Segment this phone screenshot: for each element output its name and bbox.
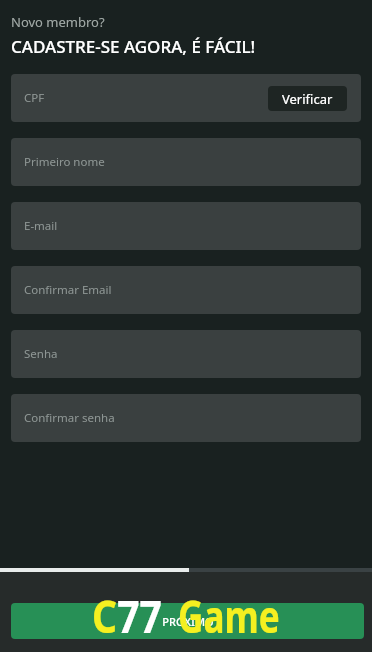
staticText: C xyxy=(92,585,117,646)
staticText: Senha xyxy=(24,346,58,362)
staticText: Game xyxy=(178,585,280,646)
button[interactable]: Confirmar senha xyxy=(11,394,361,442)
button[interactable]: PRÓXIMO xyxy=(11,603,364,639)
staticText: CADASTRE-SE AGORA, É FÁCIL! xyxy=(11,35,256,58)
button[interactable]: Verificar xyxy=(268,86,347,111)
staticText: E-mail xyxy=(24,218,58,234)
button[interactable]: E-mail xyxy=(11,202,361,250)
staticText: Verificar xyxy=(282,90,333,108)
staticText: CPF xyxy=(24,90,45,106)
button[interactable]: Senha xyxy=(11,330,361,378)
staticText: PRÓXIMO xyxy=(162,614,214,629)
button[interactable]: Confirmar Email xyxy=(11,266,361,314)
staticText: Novo membro? xyxy=(11,13,105,31)
staticText: Confirmar Email xyxy=(24,282,112,298)
staticText: Primeiro nome xyxy=(24,154,105,170)
button[interactable]: CPF xyxy=(11,74,361,122)
staticText: Confirmar senha xyxy=(24,410,115,426)
button[interactable]: Primeiro nome xyxy=(11,138,361,186)
staticText: 77 xyxy=(117,585,162,646)
